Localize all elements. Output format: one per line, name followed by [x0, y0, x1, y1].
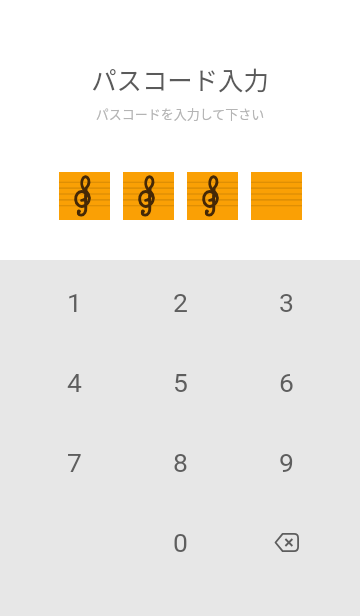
button[interactable]: 0 [127, 502, 233, 582]
button[interactable]: 4 [21, 342, 127, 422]
staticText: パスコードを入力して下さい [0, 104, 360, 123]
staticText: 9 [279, 447, 294, 478]
staticText: 2 [173, 287, 188, 318]
staticText: 5 [173, 367, 188, 398]
button[interactable]: Backspace [233, 502, 339, 582]
staticText: パスコード入力 [0, 61, 360, 98]
other: Backspace [274, 533, 299, 552]
button[interactable]: 8 [127, 422, 233, 502]
staticText: 8 [173, 447, 188, 478]
staticText: 3 [279, 287, 294, 318]
staticText: 0 [173, 527, 188, 558]
staticText: 1 [67, 287, 82, 318]
staticText: 4 [67, 367, 82, 398]
staticText: 7 [67, 447, 82, 478]
button[interactable]: 3 [233, 262, 339, 342]
button[interactable]: 5 [127, 342, 233, 422]
button[interactable]: 6 [233, 342, 339, 422]
button[interactable]: 2 [127, 262, 233, 342]
button[interactable]: 9 [233, 422, 339, 502]
staticText: 6 [279, 367, 294, 398]
button[interactable]: 1 [21, 262, 127, 342]
button[interactable]: 7 [21, 422, 127, 502]
